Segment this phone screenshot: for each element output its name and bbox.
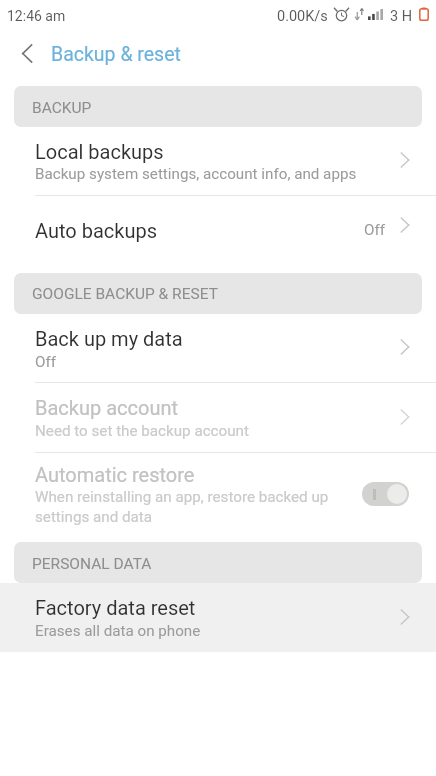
button[interactable] [0, 314, 436, 382]
staticText: 3 H [390, 8, 413, 25]
staticText: Backup & reset [51, 43, 181, 66]
staticText: Need to set the backup account [35, 422, 249, 440]
staticText: When reinstalling an app, restore backed… [35, 488, 329, 506]
staticText: Back up my data [35, 327, 183, 350]
staticText: Local backups [35, 140, 164, 163]
staticText: GOOGLE BACKUP & RESET [32, 285, 218, 303]
button[interactable] [0, 583, 436, 652]
staticText: Backup account [35, 396, 178, 419]
staticText: 12:46 am [7, 8, 66, 24]
staticText: settings and data [35, 508, 153, 526]
staticText: 0.00K/s [277, 8, 328, 25]
staticText: Off [35, 353, 57, 371]
staticText: Factory data reset [35, 596, 196, 619]
staticText: Automatic restore [35, 463, 195, 486]
button[interactable] [0, 383, 436, 452]
staticText: Erases all data on phone [35, 622, 201, 640]
button[interactable] [0, 196, 436, 256]
staticText: BACKUP [32, 99, 92, 117]
staticText: Off [364, 221, 386, 239]
button[interactable]: Automatic restore toggle [362, 482, 409, 506]
staticText: Backup system settings, account info, an… [35, 165, 357, 183]
button[interactable] [0, 127, 436, 195]
staticText: PERSONAL DATA [32, 555, 152, 573]
button[interactable]: Navigate up [4, 35, 48, 79]
staticText: Auto backups [35, 219, 157, 242]
button[interactable]: Automatic restore toggle [0, 453, 436, 542]
